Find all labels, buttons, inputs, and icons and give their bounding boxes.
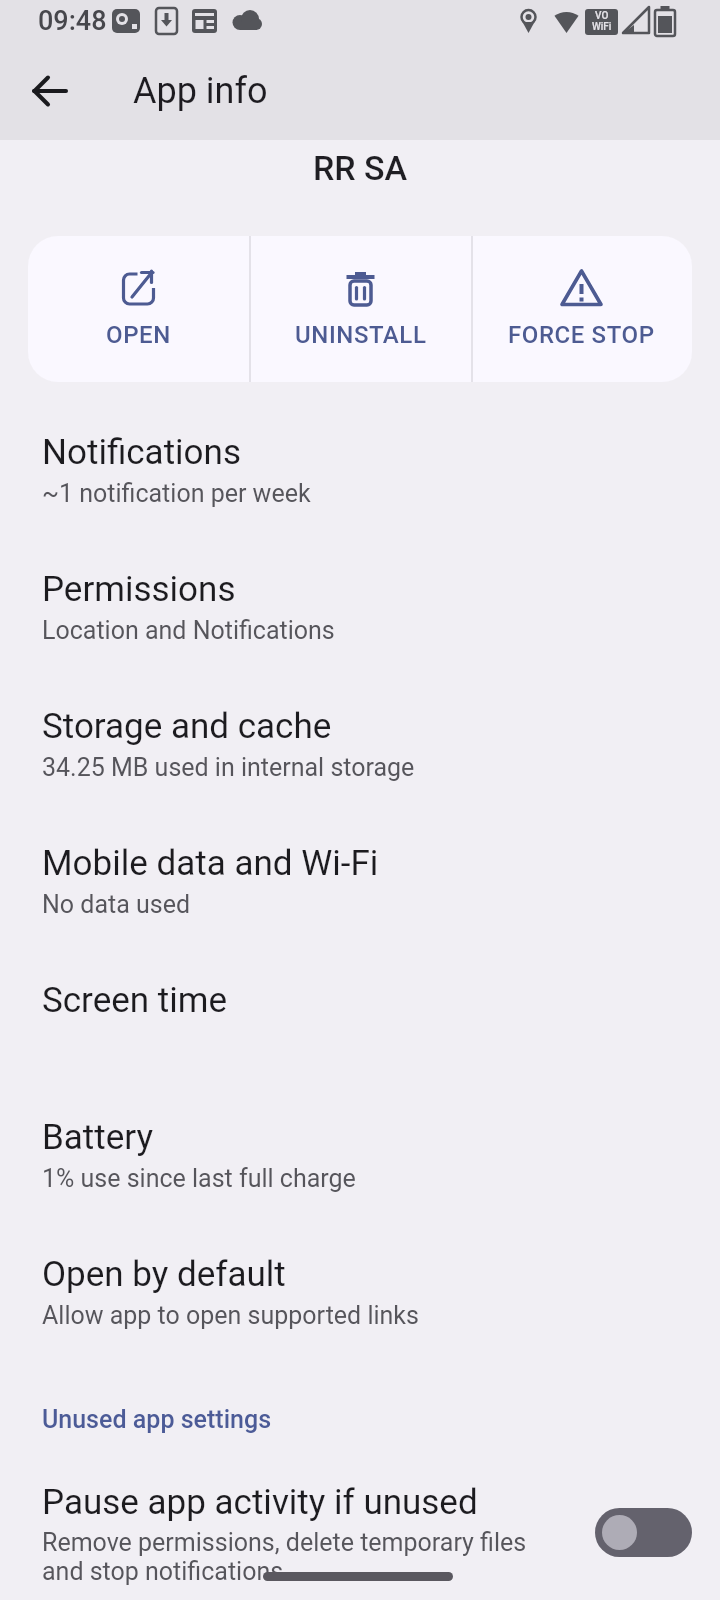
staticText: Pause app activity if unused	[42, 1482, 478, 1523]
staticText: RR SA	[313, 148, 408, 188]
staticText: ~1 notification per week	[42, 479, 311, 508]
button[interactable]: Notifications	[0, 415, 720, 552]
staticText: Remove permissions, delete temporary fil…	[42, 1528, 527, 1557]
staticText: OPEN	[106, 321, 171, 349]
staticText: Permissions	[42, 569, 236, 610]
staticText: FORCE STOP	[508, 321, 655, 349]
button[interactable]: Storage and cache	[0, 689, 720, 826]
staticText: UNINSTALL	[295, 321, 427, 349]
staticText: Allow app to open supported links	[42, 1301, 419, 1330]
staticText: Storage and cache	[42, 706, 332, 747]
staticText: Unused app settings	[42, 1405, 272, 1434]
button[interactable]: FORCE STOP	[471, 236, 692, 382]
button[interactable]	[595, 1508, 692, 1557]
staticText: Mobile data and Wi-Fi	[42, 843, 379, 884]
staticText: WiFi	[592, 21, 612, 33]
button[interactable]: Battery	[0, 1100, 720, 1237]
button[interactable]: Permissions	[0, 552, 720, 689]
button[interactable]: Mobile data and Wi-Fi	[0, 826, 720, 963]
staticText: Open by default	[42, 1254, 286, 1295]
staticText: Screen time	[42, 980, 227, 1021]
button[interactable]: UNINSTALL	[250, 236, 471, 382]
staticText: Location and Notifications	[42, 616, 335, 645]
staticText: VO	[595, 10, 609, 22]
button[interactable]	[18, 59, 82, 123]
button[interactable]: Open by default	[0, 1237, 720, 1374]
staticText: No data used	[42, 890, 191, 919]
staticText: Notifications	[42, 432, 241, 473]
staticText: 09:48	[38, 5, 107, 37]
staticText: 1% use since last full charge	[42, 1164, 356, 1193]
button[interactable]: Screen time	[0, 963, 720, 1100]
staticText: App info	[133, 70, 268, 112]
staticText: and stop notifications	[42, 1557, 284, 1586]
button[interactable]: Pause app activity if unused	[0, 1468, 720, 1600]
button[interactable]: OPEN	[28, 236, 249, 382]
staticText: 34.25 MB used in internal storage	[42, 753, 415, 782]
staticText: Battery	[42, 1117, 154, 1158]
